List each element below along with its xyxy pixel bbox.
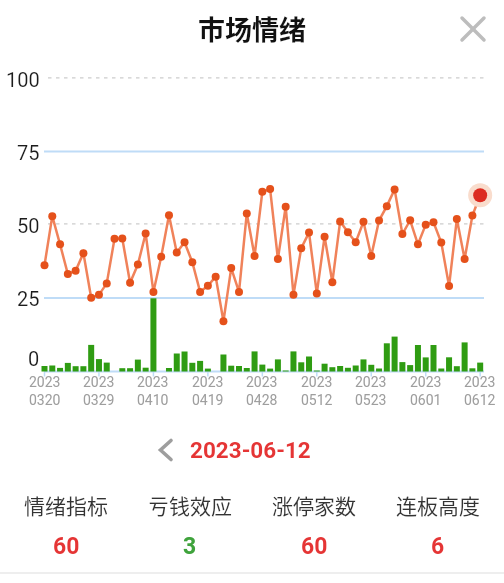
staticText: 0601 xyxy=(410,392,442,408)
staticText: 2023 xyxy=(29,374,61,390)
staticText: 100 xyxy=(6,68,40,91)
staticText: 0 xyxy=(28,347,40,370)
staticText: 情绪指标 xyxy=(24,490,108,520)
staticText: 2023-06-12 xyxy=(190,437,311,463)
staticText: 0512 xyxy=(301,392,333,408)
staticText: 25 xyxy=(17,287,40,310)
button[interactable] xyxy=(455,11,491,47)
staticText: 2023 xyxy=(464,374,496,390)
staticText: 2023 xyxy=(355,374,387,390)
staticText: 0419 xyxy=(192,392,224,408)
staticText: 60 xyxy=(301,533,328,560)
staticText: 2023 xyxy=(137,374,169,390)
staticText: 2023 xyxy=(83,374,115,390)
staticText: 2023 xyxy=(246,374,278,390)
button[interactable]: 涨停家数 xyxy=(252,489,376,565)
staticText: 市场情绪 xyxy=(198,9,306,48)
button[interactable]: 情绪指标 xyxy=(4,489,128,565)
staticText: 0410 xyxy=(137,392,169,408)
staticText: 0329 xyxy=(83,392,115,408)
staticText: 0523 xyxy=(355,392,387,408)
button[interactable]: 连板高度 xyxy=(376,489,500,565)
staticText: 0612 xyxy=(464,392,496,408)
staticText: 2023 xyxy=(301,374,333,390)
staticText: 亏钱效应 xyxy=(148,490,232,520)
staticText: 60 xyxy=(53,533,80,560)
staticText: 2023 xyxy=(410,374,442,390)
staticText: 0320 xyxy=(29,392,61,408)
staticText: 连板高度 xyxy=(396,490,480,520)
staticText: 50 xyxy=(17,214,40,237)
button[interactable]: 2023-06-12 xyxy=(158,437,311,463)
staticText: 6 xyxy=(431,533,445,560)
staticText: 3 xyxy=(183,533,197,560)
staticText: 涨停家数 xyxy=(272,490,356,520)
staticText: 2023 xyxy=(192,374,224,390)
staticText: 75 xyxy=(17,141,40,164)
button[interactable]: 亏钱效应 xyxy=(128,489,252,565)
staticText: 0428 xyxy=(246,392,278,408)
